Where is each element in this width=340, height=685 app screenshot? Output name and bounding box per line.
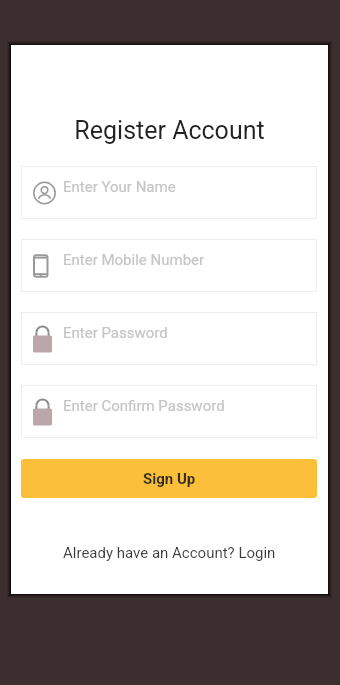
staticText: Sign Up (143, 470, 196, 488)
button[interactable]: Enter Your Name (21, 166, 317, 219)
staticText: Already have an Account? Login (63, 544, 276, 562)
staticText: Register Account (11, 116, 328, 145)
staticText: Enter Mobile Number (63, 251, 205, 269)
button[interactable]: Sign Up (21, 459, 317, 498)
staticText: Enter Confirm Password (63, 397, 225, 415)
button[interactable]: Enter Mobile Number (21, 239, 317, 292)
button[interactable]: Enter Confirm Password (21, 385, 317, 438)
staticText: Enter Password (63, 324, 168, 342)
staticText: Enter Your Name (63, 178, 176, 196)
button[interactable]: Already have an Account? Login (11, 544, 328, 562)
button[interactable]: Enter Password (21, 312, 317, 365)
